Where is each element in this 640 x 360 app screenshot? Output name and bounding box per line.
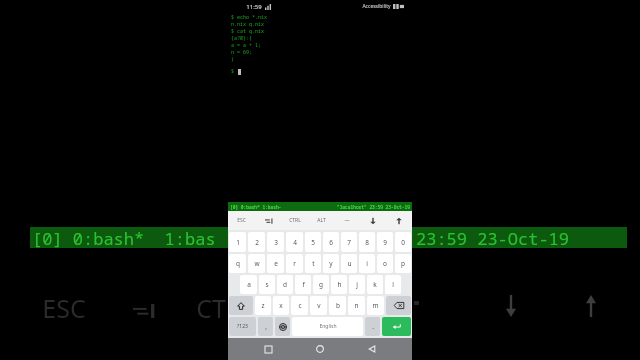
button[interactable]: 4 (286, 232, 303, 252)
button[interactable]: j (349, 275, 365, 294)
staticText: 0 (401, 238, 405, 247)
staticText: f (302, 280, 305, 289)
button[interactable]: x (273, 296, 289, 315)
button[interactable]: Back (360, 338, 384, 360)
staticText: l (392, 280, 394, 289)
button[interactable]: English (292, 317, 363, 336)
button[interactable]: i (359, 254, 375, 273)
button[interactable]: g (313, 275, 329, 294)
button[interactable]: Enter (382, 317, 411, 336)
staticText: g (319, 280, 323, 289)
button[interactable]: o (377, 254, 393, 273)
button[interactable]: w (248, 254, 265, 273)
staticText: 1 (236, 238, 240, 247)
staticText: a = a + 1; (231, 42, 262, 49)
staticText: {a?0}:{ (231, 35, 253, 42)
button[interactable]: 9 (377, 232, 393, 252)
button[interactable]: Home (308, 338, 332, 360)
staticText: 5 (311, 238, 315, 247)
button[interactable]: c (291, 296, 308, 315)
button[interactable]: b (329, 296, 346, 315)
staticText: h (337, 280, 342, 289)
button[interactable]: 5 (305, 232, 321, 252)
staticText: p (401, 259, 405, 268)
staticText: . (372, 322, 374, 331)
staticText: a (247, 280, 251, 289)
button[interactable]: CTRL (282, 211, 308, 230)
staticText: 7 (347, 238, 351, 247)
button[interactable]: 7 (341, 232, 357, 252)
button[interactable]: k (367, 275, 383, 294)
button[interactable]: d (277, 275, 293, 294)
staticText: 23:59 23-Oct-19 (416, 227, 569, 248)
button[interactable]: Arrow down (360, 211, 386, 230)
button[interactable]: y (323, 254, 339, 273)
staticText: s (265, 280, 269, 289)
button[interactable]: 0 (395, 232, 411, 252)
button[interactable]: . (365, 317, 380, 336)
staticText: 11:59 (246, 3, 262, 11)
button[interactable]: t (305, 254, 321, 273)
button[interactable]: Arrow up (386, 211, 412, 230)
staticText: w (254, 259, 260, 268)
button[interactable]: Shift (229, 296, 253, 315)
staticText: 9 (383, 238, 387, 247)
button[interactable]: ALT (308, 211, 334, 230)
staticText: m (372, 301, 379, 310)
staticText: 8 (365, 238, 369, 247)
staticText: [0] 0:bash* 1:bash- (230, 204, 282, 210)
button[interactable]: a (240, 275, 257, 294)
button[interactable]: 2 (248, 232, 265, 252)
staticText: $ (231, 68, 238, 75)
staticText: v (317, 301, 321, 310)
staticText: 6 (329, 238, 333, 247)
button[interactable]: m (367, 296, 384, 315)
staticText: ?123 (237, 323, 248, 330)
staticText: n (354, 301, 359, 310)
button[interactable]: 1 (229, 232, 246, 252)
staticText: } (231, 56, 235, 63)
button[interactable]: Change language (275, 317, 290, 336)
staticText: Accessibility (362, 3, 391, 10)
staticText: i (366, 259, 368, 268)
button[interactable]: 3 (267, 232, 284, 252)
staticText: r (293, 259, 296, 268)
button[interactable]: , (258, 317, 273, 336)
staticText: q (236, 259, 240, 268)
staticText: c (298, 301, 302, 310)
staticText: "localhost" 23:59 23-Oct-19 (337, 204, 410, 210)
button[interactable]: u (341, 254, 357, 273)
button[interactable]: q (229, 254, 246, 273)
staticText: z (261, 301, 265, 310)
button[interactable]: 6 (323, 232, 339, 252)
staticText: y (329, 259, 333, 268)
button[interactable]: r (286, 254, 303, 273)
staticText: d (283, 280, 287, 289)
staticText: n.nix q.nix (231, 21, 265, 28)
staticText: k (373, 280, 377, 289)
staticText: 3 (274, 238, 278, 247)
staticText: — (344, 217, 350, 224)
button[interactable]: v (310, 296, 327, 315)
staticText: ESC (42, 291, 86, 325)
button[interactable]: h (331, 275, 347, 294)
staticText: $ cat q.nix (231, 28, 265, 35)
button[interactable]: f (295, 275, 311, 294)
staticText: 4 (293, 238, 297, 247)
button[interactable]: ESC (228, 211, 255, 230)
staticText: ESC (237, 217, 246, 224)
button[interactable]: z (255, 296, 271, 315)
staticText: CTRL (289, 217, 301, 224)
button[interactable]: n (348, 296, 365, 315)
staticText: ALT (317, 217, 326, 224)
button[interactable]: e (267, 254, 284, 273)
button[interactable]: s (259, 275, 275, 294)
button[interactable]: ?123 (229, 317, 256, 336)
button[interactable]: 8 (359, 232, 375, 252)
button[interactable]: Backspace (386, 296, 411, 315)
button[interactable]: p (395, 254, 411, 273)
button[interactable]: Tab (255, 211, 282, 230)
button[interactable]: — (334, 211, 360, 230)
button[interactable]: l (385, 275, 401, 294)
button[interactable]: Recent apps (256, 338, 280, 360)
